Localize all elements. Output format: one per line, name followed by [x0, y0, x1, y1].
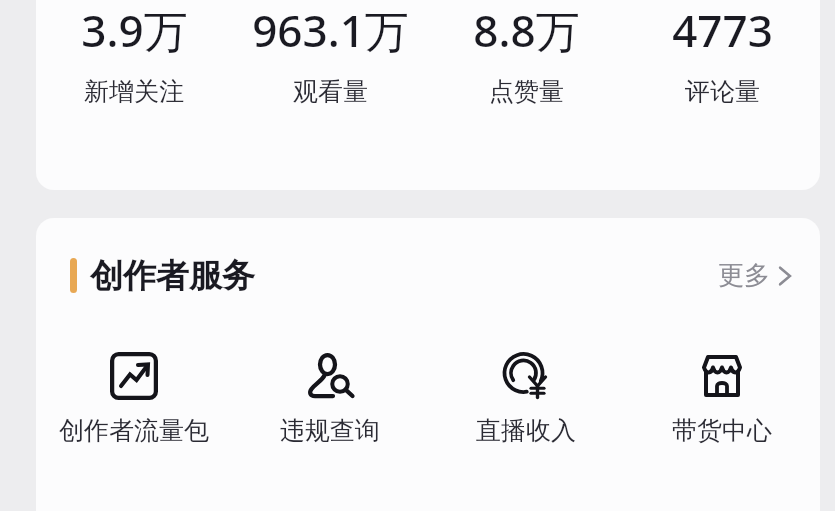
button[interactable]: 直播收入 — [428, 351, 624, 446]
staticText: 新增关注 — [84, 76, 184, 107]
button[interactable]: 创作者流量包 — [36, 351, 232, 446]
button[interactable]: 更多 — [714, 251, 796, 300]
button[interactable]: 带货中心 — [624, 351, 820, 446]
staticText: 8.8万 — [473, 0, 580, 60]
button[interactable]: 963.1万 — [232, 0, 428, 107]
staticText: 违规查询 — [280, 415, 380, 446]
staticText: 直播收入 — [476, 415, 576, 446]
staticText: 更多 — [718, 259, 770, 292]
staticText: 3.9万 — [81, 0, 188, 60]
staticText: 创作者流量包 — [59, 415, 209, 446]
button[interactable]: 违规查询 — [232, 351, 428, 446]
staticText: 4773 — [672, 0, 773, 60]
staticText: 评论量 — [685, 76, 760, 107]
button[interactable]: 8.8万 — [428, 0, 624, 107]
staticText: 创作者服务 — [90, 255, 255, 297]
staticText: 观看量 — [293, 76, 368, 107]
button[interactable]: 3.9万 — [36, 0, 232, 107]
staticText: 点赞量 — [489, 76, 564, 107]
staticText: 带货中心 — [672, 415, 772, 446]
button[interactable]: 4773 — [624, 0, 820, 107]
staticText: 963.1万 — [252, 0, 409, 60]
